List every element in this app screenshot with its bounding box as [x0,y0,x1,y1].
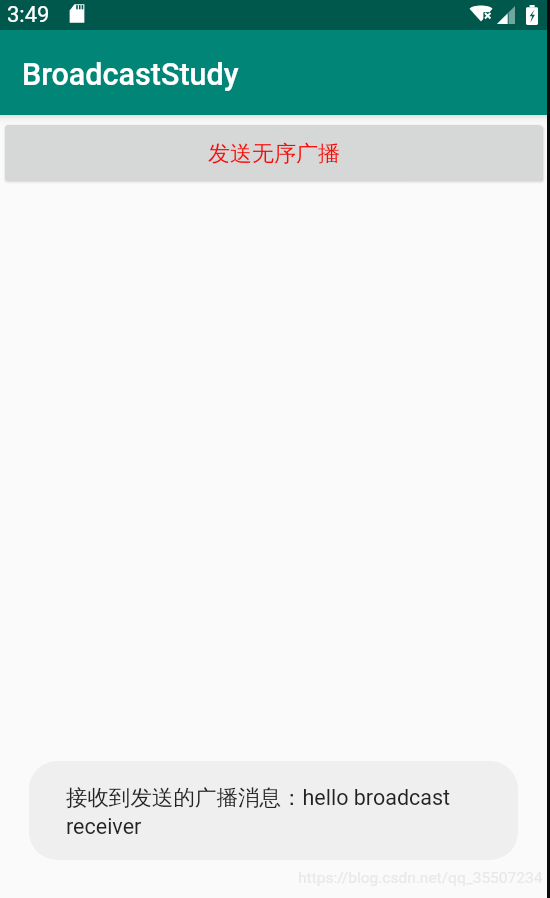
staticText: 3:49 [7,2,50,28]
staticText: BroadcastStudy [22,57,239,93]
other: Battery charging [526,5,538,25]
staticText: https://blog.csdn.net/qq_35507234 [298,869,543,887]
staticText: 发送无序广播 [208,140,340,168]
other: SD card [69,3,85,24]
other: Mobile signal [497,6,515,24]
staticText: 接收到发送的广播消息：hello broadcast receiver [66,783,487,840]
other: Wi-Fi disconnected [469,4,493,26]
button[interactable]: 发送无序广播 [5,125,542,181]
